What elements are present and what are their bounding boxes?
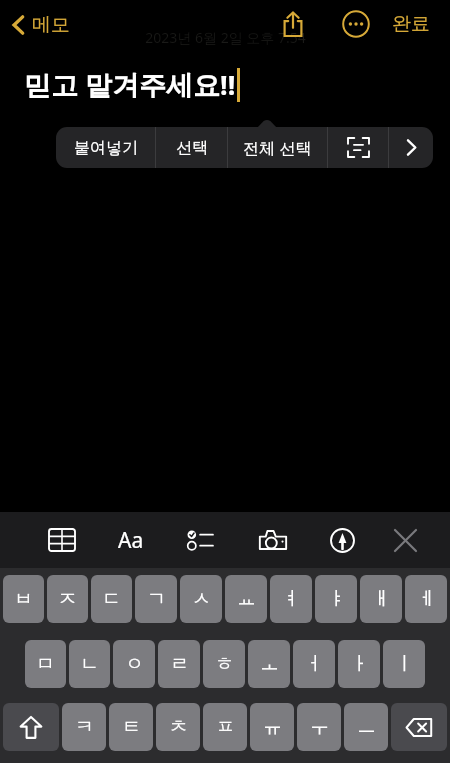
staticText: ㄷ	[102, 587, 121, 611]
button[interactable]: ㅁ	[25, 640, 66, 688]
staticText: ㅠ	[263, 715, 282, 739]
staticText: ㅁ	[36, 652, 55, 676]
button[interactable]: More	[389, 127, 433, 168]
staticText: ㄴ	[80, 652, 99, 676]
button[interactable]: ㅏ	[338, 640, 380, 688]
button[interactable]: Camera	[255, 522, 291, 558]
staticText: 붙여넣기	[74, 138, 138, 158]
button[interactable]: ㅂ	[3, 575, 44, 623]
button[interactable]: Scan text	[328, 127, 388, 168]
staticText: ㅋ	[75, 715, 94, 739]
staticText: ㅜ	[310, 715, 329, 739]
button[interactable]: ㅑ	[315, 575, 357, 623]
button[interactable]: ㅊ	[156, 703, 200, 751]
button[interactable]: ㅠ	[250, 703, 294, 751]
button[interactable]: Table	[44, 522, 80, 558]
staticText: 완료	[392, 12, 430, 36]
staticText: 믿고 맡겨주세요!!	[24, 66, 236, 103]
staticText: ㅔ	[417, 587, 436, 611]
button[interactable]: ㅐ	[360, 575, 402, 623]
staticText: ㅣ	[395, 652, 414, 676]
staticText: ㅑ	[327, 587, 346, 611]
staticText: 선택	[176, 138, 208, 158]
staticText: ㅊ	[169, 715, 188, 739]
staticText: 메모	[32, 13, 70, 37]
button[interactable]: ㅕ	[270, 575, 312, 623]
button[interactable]: 완료	[384, 8, 438, 40]
button[interactable]: ㅈ	[47, 575, 88, 623]
button[interactable]: 붙여넣기	[56, 127, 155, 168]
button[interactable]: ㅍ	[203, 703, 247, 751]
button[interactable]: ㅔ	[405, 575, 447, 623]
button[interactable]: Aa	[113, 522, 149, 558]
staticText: 전체 선택	[243, 137, 312, 159]
staticText: ㅇ	[125, 652, 144, 676]
staticText: ㅈ	[58, 587, 77, 611]
staticText: ㅛ	[237, 587, 256, 611]
button[interactable]: ㅓ	[293, 640, 335, 688]
staticText: ㅕ	[282, 587, 301, 611]
button[interactable]: Markup	[324, 522, 360, 558]
button[interactable]: ㅛ	[225, 575, 267, 623]
staticText: ㅡ	[357, 715, 376, 739]
button[interactable]: ㅋ	[62, 703, 106, 751]
button[interactable]: ㄹ	[158, 640, 200, 688]
button[interactable]: ㅣ	[383, 640, 425, 688]
staticText: ㅗ	[260, 652, 279, 676]
staticText: ㅎ	[215, 652, 234, 676]
button[interactable]: Close keyboard	[387, 522, 423, 558]
button[interactable]: ㄴ	[69, 640, 110, 688]
staticText: ㅓ	[305, 652, 324, 676]
button[interactable]: ㅜ	[297, 703, 341, 751]
button[interactable]: ㄱ	[135, 575, 177, 623]
button[interactable]: Shift	[3, 703, 59, 751]
staticText: 2023년 6월 2일 오후 7:54	[145, 28, 306, 47]
button[interactable]: ㅅ	[180, 575, 222, 623]
staticText: ㅏ	[350, 652, 369, 676]
button[interactable]: 전체 선택	[228, 127, 327, 168]
button[interactable]: Backspace	[391, 703, 447, 751]
staticText: ㅐ	[372, 587, 391, 611]
button[interactable]: Share	[275, 6, 311, 42]
staticText: ㄹ	[170, 652, 189, 676]
button[interactable]: Checklist	[182, 522, 218, 558]
button[interactable]: 선택	[156, 127, 227, 168]
staticText: Aa	[118, 526, 144, 555]
staticText: ㅂ	[14, 587, 33, 611]
button[interactable]: ㅌ	[109, 703, 153, 751]
button[interactable]: More options	[338, 6, 374, 42]
button[interactable]: ㅡ	[344, 703, 388, 751]
staticText: ㅍ	[216, 715, 235, 739]
button[interactable]: 메모	[6, 10, 76, 40]
staticText: ㅌ	[122, 715, 141, 739]
staticText: ㄱ	[147, 587, 166, 611]
button[interactable]: ㅇ	[113, 640, 155, 688]
button[interactable]: ㅗ	[248, 640, 290, 688]
button[interactable]: ㅎ	[203, 640, 245, 688]
button[interactable]: ㄷ	[91, 575, 132, 623]
staticText: ㅅ	[192, 587, 211, 611]
